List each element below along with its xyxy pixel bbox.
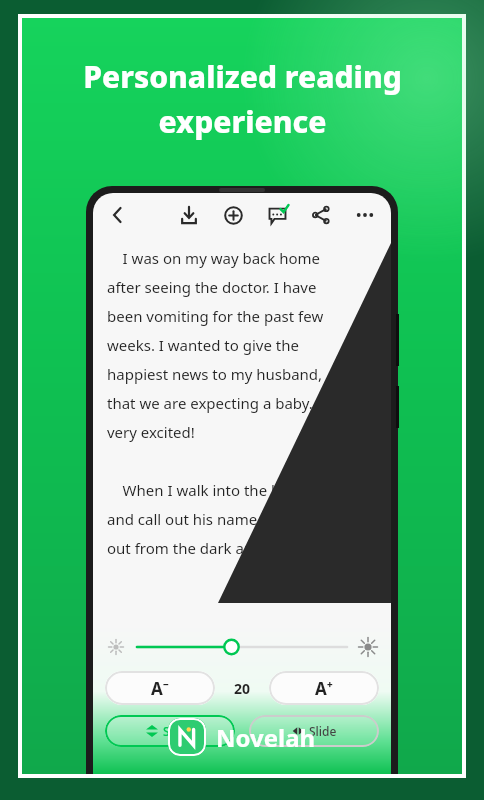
staticText: A⁻ — [151, 677, 169, 700]
staticText: out from the dark and stares at me — [107, 538, 353, 558]
staticText: 20 — [234, 679, 251, 698]
button[interactable]: Comments — [263, 201, 291, 229]
button[interactable]: Add — [219, 201, 247, 229]
button[interactable]: Brightness — [137, 635, 347, 659]
staticText: happiest news to my husband, — [107, 364, 323, 384]
staticText: When I walk into the house — [107, 480, 315, 500]
staticText: Slide — [309, 723, 337, 739]
button[interactable]: Scroll — [105, 715, 235, 747]
staticText: very excited! — [107, 422, 195, 442]
staticText: Scroll — [163, 723, 195, 739]
button[interactable]: A⁻ — [105, 671, 215, 705]
button[interactable]: More options — [351, 201, 379, 229]
button[interactable]: Slide — [249, 715, 379, 747]
button[interactable]: A⁺ — [269, 671, 379, 705]
staticText: A⁺ — [315, 677, 333, 700]
button[interactable]: Back — [105, 202, 131, 228]
staticText: weeks. I wanted to give the — [107, 335, 299, 355]
staticText: experience — [158, 101, 327, 142]
staticText: I was on my way back home — [107, 248, 321, 268]
staticText: after seeing the doctor. I have — [107, 277, 317, 297]
staticText: Novelah — [216, 721, 316, 754]
button[interactable]: Download — [175, 201, 203, 229]
staticText: Personalized reading — [83, 56, 402, 97]
button[interactable]: Share — [307, 201, 335, 229]
staticText: that we are expecting a baby. I am — [107, 393, 349, 413]
button[interactable]: Novelah — [168, 718, 316, 756]
staticText: and call out his name, he comes — [107, 509, 333, 529]
staticText: been vomiting for the past few — [107, 306, 324, 326]
